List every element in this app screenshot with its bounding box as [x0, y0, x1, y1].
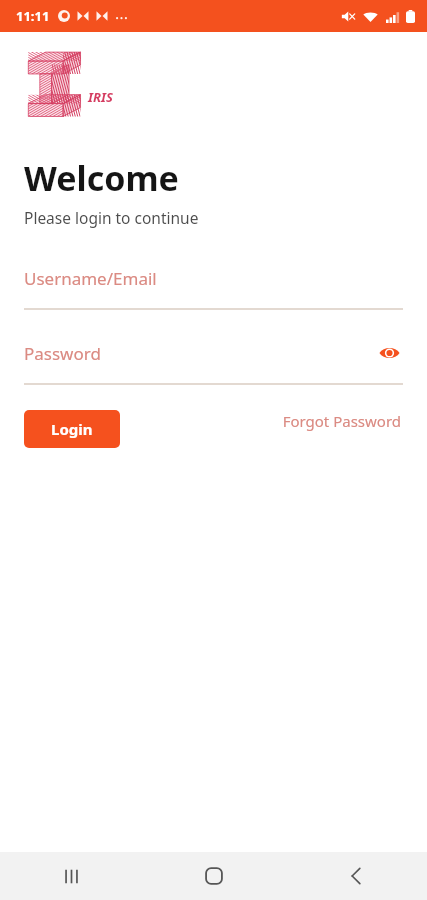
staticText: Login	[51, 419, 93, 439]
staticText: 11:11	[16, 7, 50, 25]
staticText: Please login to continue	[24, 207, 199, 228]
staticText: IRIS	[88, 88, 113, 106]
button[interactable]: Recent apps	[0, 852, 143, 900]
button[interactable]: Forgot Password	[280, 407, 403, 435]
button[interactable]: Back	[285, 852, 427, 900]
button[interactable]: Show password	[375, 339, 403, 367]
staticText: Password	[24, 342, 101, 365]
staticText: Welcome	[24, 155, 179, 201]
staticText: Forgot Password	[282, 411, 401, 431]
button[interactable]: Login	[24, 410, 120, 448]
button[interactable]: Home	[143, 852, 285, 900]
button[interactable]: Username/Email	[0, 263, 427, 310]
button[interactable]: Password	[0, 338, 427, 385]
staticText: Username/Email	[24, 267, 157, 290]
